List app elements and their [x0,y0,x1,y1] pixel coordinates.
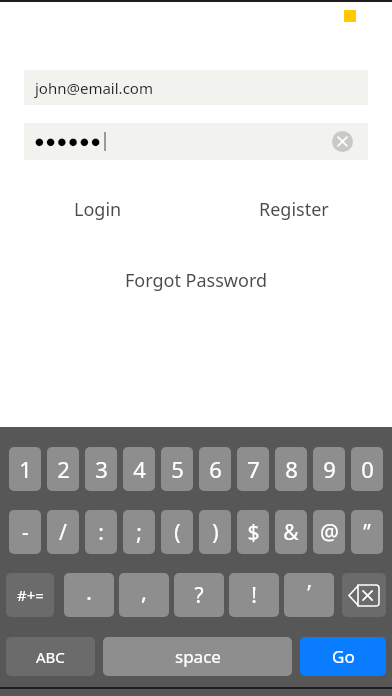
button[interactable]: ; [123,510,155,554]
staticText: Forgot Password [125,268,268,293]
staticText: ’ [307,579,311,608]
button[interactable]: #+= [6,573,54,617]
staticText: @ [320,518,339,547]
staticText: 7 [247,454,260,484]
staticText: 5 [171,454,184,484]
staticText: 2 [57,454,70,484]
staticText: - [22,518,29,547]
staticText: ? [194,581,204,610]
staticText: Register [259,197,329,222]
staticText: ( [174,518,181,547]
button[interactable]: Go [300,637,386,676]
staticText: ! [251,581,257,610]
staticText: ●●●●●● [35,136,103,148]
button[interactable]: Backspace [342,573,386,617]
button[interactable]: 3 [85,447,117,491]
button[interactable]: 1 [9,447,41,491]
button[interactable]: 2 [47,447,79,491]
staticText: . [86,576,92,606]
staticText: ABC [36,647,65,667]
button[interactable]: ’ [284,573,334,617]
button[interactable]: 9 [313,447,345,491]
staticText: 6 [209,454,222,484]
staticText: 1 [19,454,32,484]
button[interactable]: , [119,573,169,617]
staticText: 4 [133,454,146,484]
button[interactable]: 7 [237,447,269,491]
button[interactable]: john@email.com [24,70,368,105]
staticText: #+= [17,585,44,605]
staticText: : [98,518,104,547]
button[interactable]: ( [161,510,193,554]
button[interactable]: ABC [6,637,95,676]
button[interactable]: space [103,637,292,676]
button[interactable]: 4 [123,447,155,491]
staticText: space [175,645,221,668]
button[interactable]: 5 [161,447,193,491]
staticText: 8 [285,454,298,484]
button[interactable]: . [64,573,114,617]
staticText: john@email.com [35,78,153,98]
button[interactable]: Register [196,193,392,225]
staticText: 0 [361,454,374,484]
button[interactable]: - [9,510,41,554]
button[interactable]: ●●●●●● [24,123,368,160]
button[interactable]: ! [229,573,279,617]
staticText: 3 [95,454,108,484]
button[interactable]: @ [313,510,345,554]
button[interactable]: ) [199,510,231,554]
button[interactable]: Login [0,193,196,225]
staticText: & [283,518,299,547]
button[interactable]: / [47,510,79,554]
button[interactable]: 0 [351,447,383,491]
button[interactable]: & [275,510,307,554]
staticText: $ [247,518,260,547]
button[interactable]: : [85,510,117,554]
staticText: ) [212,518,219,547]
staticText: Login [74,197,122,222]
staticText: ” [363,518,371,547]
staticText: , [141,576,147,606]
button[interactable]: Clear text [332,131,353,152]
button[interactable]: $ [237,510,269,554]
staticText: Go [332,645,355,668]
button[interactable]: Forgot Password [0,265,392,295]
button[interactable]: ” [351,510,383,554]
button[interactable]: 6 [199,447,231,491]
button[interactable]: 8 [275,447,307,491]
button[interactable]: ? [174,573,224,617]
staticText: 9 [323,454,336,484]
staticText: / [59,518,67,547]
staticText: ; [136,518,142,547]
